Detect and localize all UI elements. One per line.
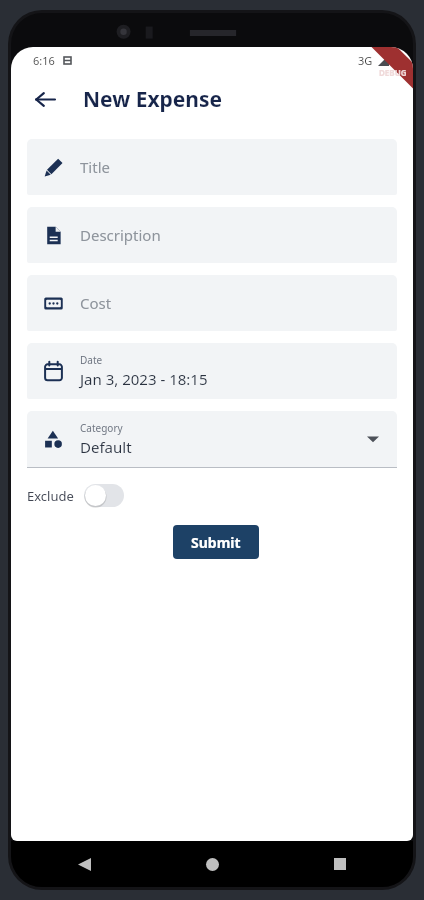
button[interactable]: Exclude: [27, 484, 124, 507]
button[interactable]: Recents: [323, 847, 357, 881]
staticText: 3G: [358, 53, 373, 68]
staticText: Cost: [80, 293, 112, 313]
staticText: 6:16: [33, 53, 55, 68]
button[interactable]: Cost: [27, 275, 397, 331]
button[interactable]: Home: [195, 847, 229, 881]
button[interactable]: Submit: [173, 525, 259, 559]
staticText: Date: [80, 353, 103, 367]
button[interactable]: Date: [27, 343, 397, 399]
staticText: DEBUG: [379, 67, 407, 78]
staticText: Submit: [191, 533, 241, 552]
button[interactable]: Category: [27, 411, 397, 467]
button[interactable]: Title: [27, 139, 397, 195]
staticText: Jan 3, 2023 - 18:15: [80, 369, 208, 389]
button[interactable]: Back: [25, 79, 65, 119]
staticText: Category: [80, 421, 123, 435]
staticText: Default: [80, 437, 132, 457]
staticText: Exclude: [27, 487, 74, 505]
staticText: Description: [80, 225, 161, 245]
button[interactable]: Description: [27, 207, 397, 263]
staticText: Title: [80, 157, 110, 177]
button[interactable]: Back: [67, 847, 101, 881]
staticText: New Expense: [83, 85, 223, 114]
